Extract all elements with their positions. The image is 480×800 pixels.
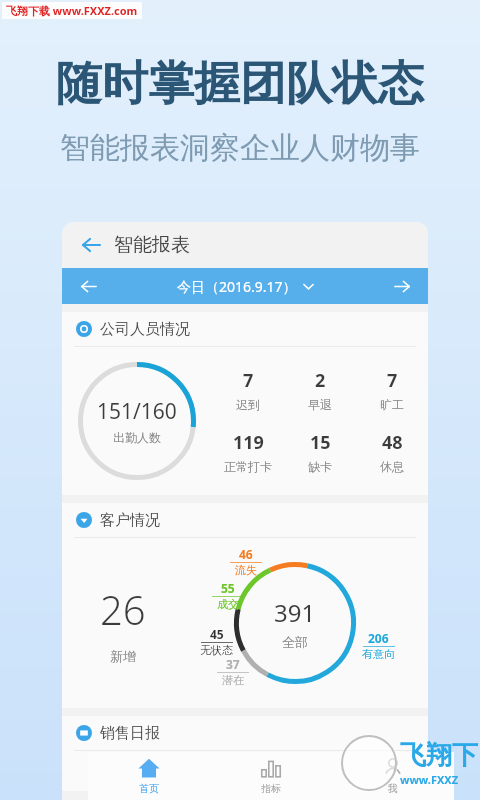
staticText: 151/160 [97,397,177,426]
button[interactable]: 指标 [210,752,332,800]
button[interactable]: 前一天 [74,272,102,300]
staticText: 391 [274,596,316,629]
staticText: 指标 [261,782,281,795]
button[interactable]: 后一天 [388,272,416,300]
staticText: 有意向 [362,647,395,661]
staticText: 我 [388,782,398,795]
staticText: 55 [221,580,235,596]
button[interactable]: 48 [356,430,428,474]
button[interactable]: 15 [284,430,356,474]
staticText: 7 [387,368,398,393]
button[interactable]: 首页 [88,752,210,800]
staticText: 销售日报 [100,724,160,743]
staticText: 公司人员情况 [100,320,190,339]
staticText: 飞翔下 [400,739,478,772]
staticText: 飞翔下载 www.FXXZ.com [6,3,138,18]
staticText: 37 [226,656,240,672]
staticText: 早退 [308,397,332,412]
staticText: 今日（2016.9.17） [177,277,297,296]
staticText: 26 [100,582,146,636]
staticText: 45 [210,626,224,642]
button[interactable]: 我 [332,752,454,800]
staticText: 首页 [139,782,159,795]
staticText: 无状态 [200,643,233,657]
staticText: 智能报表洞察企业人财物事 [60,129,420,167]
staticText: 迟到 [236,397,260,412]
staticText: 206 [368,630,389,646]
staticText: 缺卡 [308,459,332,474]
staticText: 2 [315,368,326,393]
staticText: 随时掌握团队状态 [56,55,424,113]
button[interactable]: 7 [212,368,284,412]
staticText: 客户情况 [100,511,160,530]
button[interactable]: 2 [284,368,356,412]
staticText: www.FXXZ [400,772,459,787]
staticText: 119 [233,430,264,455]
staticText: 智能报表 [114,233,190,257]
staticText: 成交 [217,597,239,611]
button[interactable]: 7 [356,368,428,412]
staticText: 7 [243,368,254,393]
staticText: 新增 [110,648,136,664]
button[interactable]: 客户情况 [76,503,428,537]
button[interactable]: 公司人员情况 [76,312,428,346]
staticText: 休息 [380,459,404,474]
button[interactable]: 销售日报 [76,716,428,750]
button[interactable]: 今日（2016.9.17） [102,277,388,296]
staticText: 潜在 [222,673,244,687]
staticText: 出勤人数 [113,430,161,445]
staticText: 全部 [282,634,308,650]
staticText: 48 [382,430,403,455]
staticText: 15 [310,430,331,455]
staticText: 正常打卡 [224,459,272,474]
staticText: 旷工 [380,397,404,412]
button[interactable]: 返回 [76,230,106,260]
staticText: 流失 [235,563,257,577]
staticText: 46 [239,546,253,562]
button[interactable]: 119 [212,430,284,474]
